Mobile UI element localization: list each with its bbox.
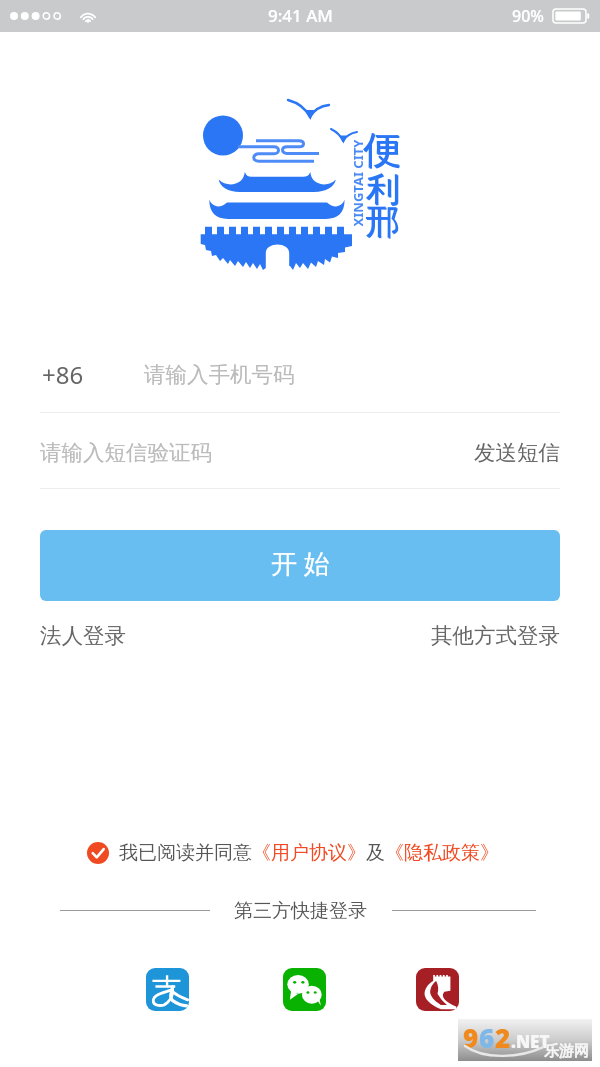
staticText: +86 [42,358,84,391]
button[interactable]: WeChat login [283,968,326,1011]
button[interactable]: 发送短信 [474,439,560,466]
button[interactable]: 法人登录 [40,622,126,649]
staticText: 6 [479,1020,495,1055]
staticText: 《隐私政策》 [385,841,499,865]
button[interactable]: +86 [40,348,560,400]
staticText: 邢 [366,201,400,244]
staticText: 利 [367,169,401,212]
staticText: 利 [366,168,400,211]
staticText: 乐游网 [544,1042,589,1061]
staticText: 邢 [365,200,399,243]
button[interactable]: 其他方式登录 [431,622,560,649]
other: Agree checkbox [87,842,109,864]
button[interactable]: Other login [416,968,459,1011]
staticText: 便 [363,126,401,174]
button[interactable]: 开 始 [40,530,560,601]
staticText: XINGTAI CITY [348,139,365,226]
button[interactable]: Agree checkbox [87,841,600,865]
staticText: 开 始 [271,545,330,581]
staticText: .NET [511,1030,550,1053]
staticText: 9:41 AM [268,4,333,27]
staticText: 90% [512,5,544,27]
staticText: 2 [495,1020,511,1055]
staticText: 《用户协议》 [252,841,366,865]
staticText: 我已阅读并同意 [119,841,252,865]
staticText: 请输入手机号码 [144,361,295,388]
staticText: 9 [463,1020,479,1055]
staticText: 请输入短信验证码 [40,439,212,466]
staticText: 便 [364,127,402,175]
staticText: 第三方快捷登录 [234,899,367,923]
staticText: 及 [366,841,385,865]
button[interactable]: Alipay login [146,968,189,1011]
